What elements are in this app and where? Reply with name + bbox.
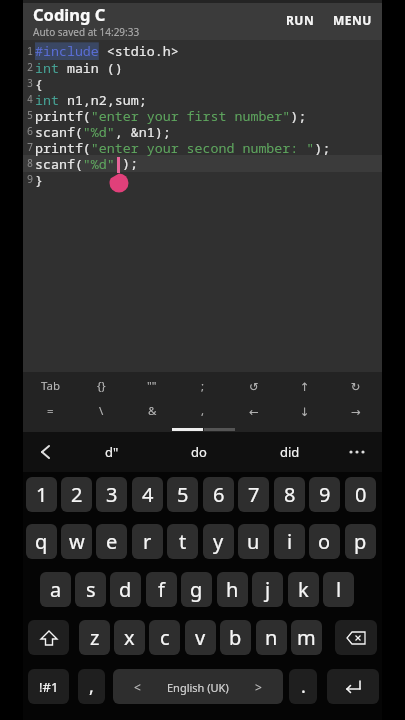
- button[interactable]: 0: [345, 477, 376, 512]
- button[interactable]: u: [238, 524, 269, 559]
- button[interactable]: e: [96, 524, 127, 559]
- staticText: u: [247, 528, 260, 555]
- staticText: \: [99, 403, 104, 419]
- button[interactable]: [28, 620, 69, 655]
- staticText: m: [297, 624, 316, 651]
- staticText: p: [354, 528, 367, 555]
- button[interactable]: 9: [309, 477, 340, 512]
- staticText: {}: [97, 378, 106, 394]
- staticText: Tab: [41, 378, 60, 394]
- staticText: ↓: [300, 405, 310, 418]
- button[interactable]: v: [185, 620, 216, 655]
- button[interactable]: l: [323, 572, 354, 607]
- button[interactable]: w: [61, 524, 92, 559]
- staticText: 0: [355, 481, 367, 508]
- staticText: 8: [284, 481, 296, 508]
- button[interactable]: !#1: [28, 669, 69, 704]
- button[interactable]: ,: [181, 400, 225, 422]
- staticText: "": [147, 378, 157, 394]
- button[interactable]: .: [289, 669, 317, 704]
- button[interactable]: c: [149, 620, 180, 655]
- staticText: ;: [201, 378, 205, 394]
- staticText: ←: [249, 405, 259, 418]
- button[interactable]: <: [113, 669, 283, 704]
- button[interactable]: b: [220, 620, 251, 655]
- button[interactable]: [339, 432, 375, 472]
- button[interactable]: =: [28, 400, 72, 422]
- staticText: =: [47, 403, 54, 419]
- button[interactable]: i: [274, 524, 305, 559]
- staticText: #include <stdio.h> int main () { int n1,…: [35, 42, 331, 188]
- staticText: z: [90, 624, 100, 651]
- staticText: d: [119, 576, 132, 603]
- button[interactable]: [335, 620, 377, 655]
- staticText: h: [226, 576, 239, 603]
- button[interactable]: &: [130, 400, 174, 422]
- staticText: →: [351, 405, 361, 418]
- staticText: n: [265, 624, 278, 651]
- staticText: !#1: [39, 678, 59, 696]
- staticText: MENU: [333, 12, 372, 28]
- button[interactable]: \: [79, 400, 123, 422]
- button[interactable]: k: [288, 572, 319, 607]
- staticText: x: [124, 624, 135, 651]
- button[interactable]: g: [181, 572, 212, 607]
- staticText: ,: [201, 403, 205, 419]
- button[interactable]: d": [82, 432, 142, 472]
- button[interactable]: n: [256, 620, 287, 655]
- button[interactable]: [27, 432, 63, 472]
- button[interactable]: [327, 669, 379, 704]
- button[interactable]: a: [40, 572, 71, 607]
- button[interactable]: ←: [232, 400, 276, 422]
- staticText: w: [69, 528, 85, 555]
- staticText: r: [143, 528, 152, 555]
- button[interactable]: ↓: [283, 400, 327, 422]
- button[interactable]: MENU: [325, 0, 379, 40]
- button[interactable]: "": [130, 375, 174, 397]
- button[interactable]: h: [217, 572, 248, 607]
- button[interactable]: x: [114, 620, 145, 655]
- button[interactable]: {}: [79, 375, 123, 397]
- button[interactable]: do: [169, 432, 229, 472]
- button[interactable]: z: [79, 620, 110, 655]
- staticText: t: [179, 528, 187, 555]
- button[interactable]: 3: [96, 477, 127, 512]
- button[interactable]: ↺: [232, 375, 276, 397]
- button[interactable]: o: [309, 524, 340, 559]
- button[interactable]: did: [260, 432, 320, 472]
- button[interactable]: RUN: [275, 0, 325, 40]
- staticText: ↺: [249, 380, 259, 393]
- button[interactable]: f: [146, 572, 177, 607]
- staticText: 6: [213, 481, 225, 508]
- button[interactable]: →: [334, 400, 378, 422]
- button[interactable]: d: [110, 572, 141, 607]
- staticText: s: [86, 576, 96, 603]
- button[interactable]: s: [75, 572, 106, 607]
- button[interactable]: j: [252, 572, 283, 607]
- button[interactable]: 1: [26, 477, 57, 512]
- staticText: >: [255, 679, 262, 695]
- staticText: 9: [319, 481, 331, 508]
- button[interactable]: q: [26, 524, 57, 559]
- button[interactable]: r: [132, 524, 163, 559]
- staticText: l: [336, 576, 342, 603]
- button[interactable]: ↑: [283, 375, 327, 397]
- staticText: Auto saved at 14:29:33: [33, 25, 140, 39]
- button[interactable]: Tab: [28, 375, 72, 397]
- button[interactable]: p: [345, 524, 376, 559]
- staticText: b: [229, 624, 242, 651]
- button[interactable]: ↻: [334, 375, 378, 397]
- staticText: c: [160, 624, 170, 651]
- button[interactable]: t: [167, 524, 198, 559]
- button[interactable]: 5: [167, 477, 198, 512]
- button[interactable]: m: [291, 620, 322, 655]
- button[interactable]: 2: [61, 477, 92, 512]
- staticText: 1: [36, 481, 48, 508]
- button[interactable]: 8: [274, 477, 305, 512]
- button[interactable]: ;: [181, 375, 225, 397]
- button[interactable]: y: [203, 524, 234, 559]
- button[interactable]: ,: [78, 669, 105, 704]
- button[interactable]: 4: [132, 477, 163, 512]
- button[interactable]: 6: [203, 477, 234, 512]
- button[interactable]: 7: [238, 477, 269, 512]
